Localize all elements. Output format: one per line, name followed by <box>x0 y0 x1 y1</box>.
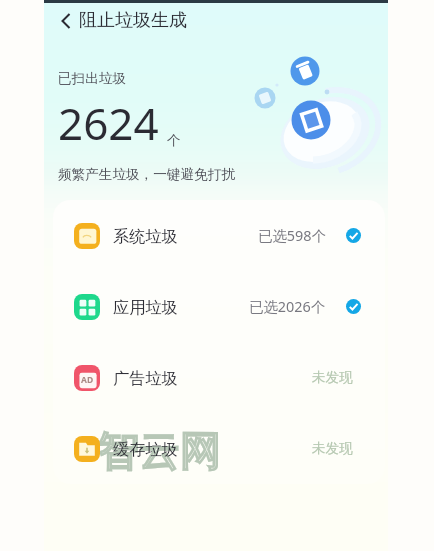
staticText: 已扫出垃圾 <box>58 70 126 87</box>
staticText: 缓存垃圾 <box>113 439 178 459</box>
staticText: 阻止垃圾生成 <box>79 9 187 32</box>
staticText: 系统垃圾 <box>113 226 178 246</box>
button[interactable]: AD <box>53 342 385 413</box>
staticText: 未发现 <box>312 369 353 386</box>
button[interactable]: 应用垃圾 <box>53 271 385 342</box>
staticText: 频繁产生垃圾，一键避免打扰 <box>58 166 235 183</box>
staticText: AD <box>81 374 94 386</box>
staticText: 智云网 <box>98 426 221 478</box>
staticText: 未发现 <box>312 440 353 457</box>
staticText: 已选598个 <box>258 226 326 246</box>
staticText: 2624 <box>58 93 159 153</box>
button[interactable]: 系统垃圾 <box>53 200 385 271</box>
button[interactable]: Back <box>53 8 79 34</box>
staticText: 个 <box>167 132 181 149</box>
staticText: 已选2026个 <box>249 297 326 317</box>
staticText: 广告垃圾 <box>113 368 178 388</box>
button[interactable]: 缓存垃圾 <box>53 413 385 484</box>
staticText: 应用垃圾 <box>113 297 178 317</box>
